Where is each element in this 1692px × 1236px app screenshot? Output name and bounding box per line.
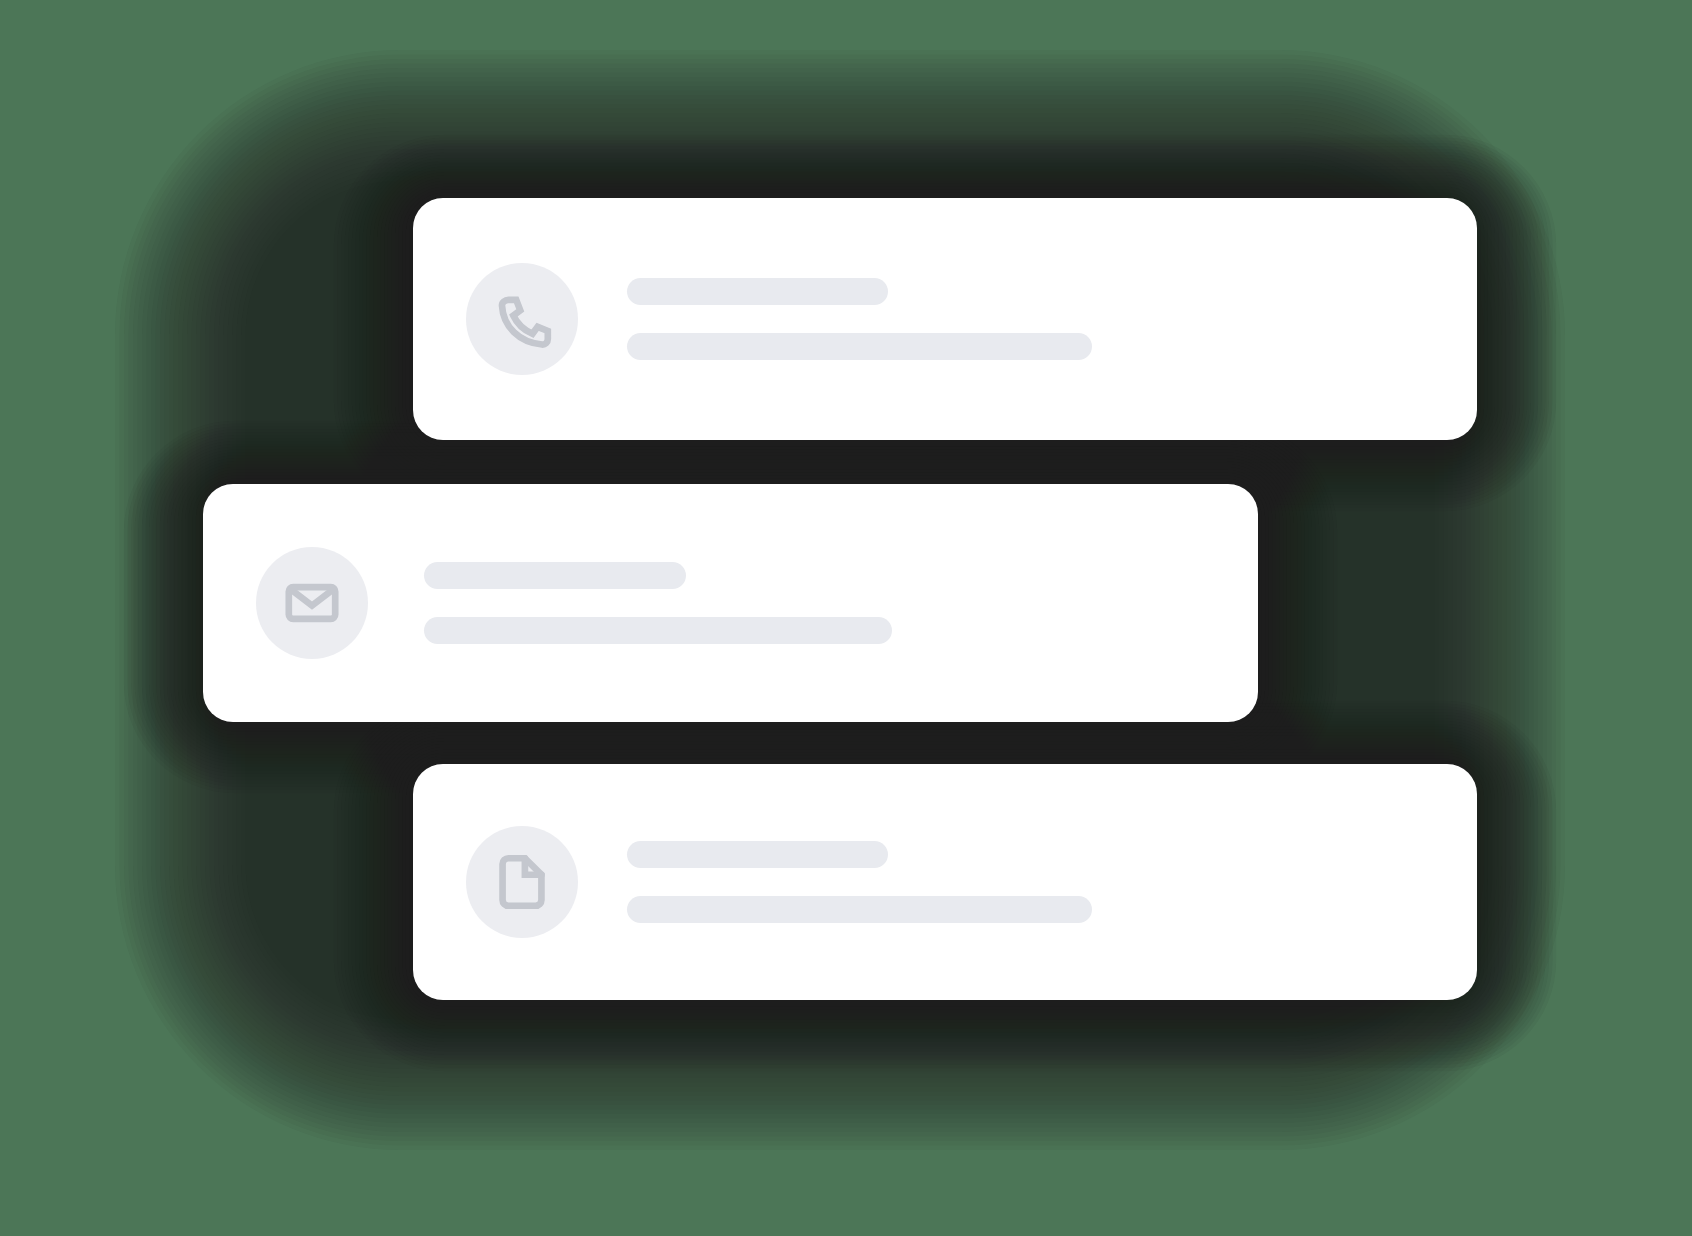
button[interactable]: Document: [413, 764, 1477, 1000]
button[interactable]: Call: [413, 198, 1477, 440]
button[interactable]: Email: [203, 484, 1258, 722]
